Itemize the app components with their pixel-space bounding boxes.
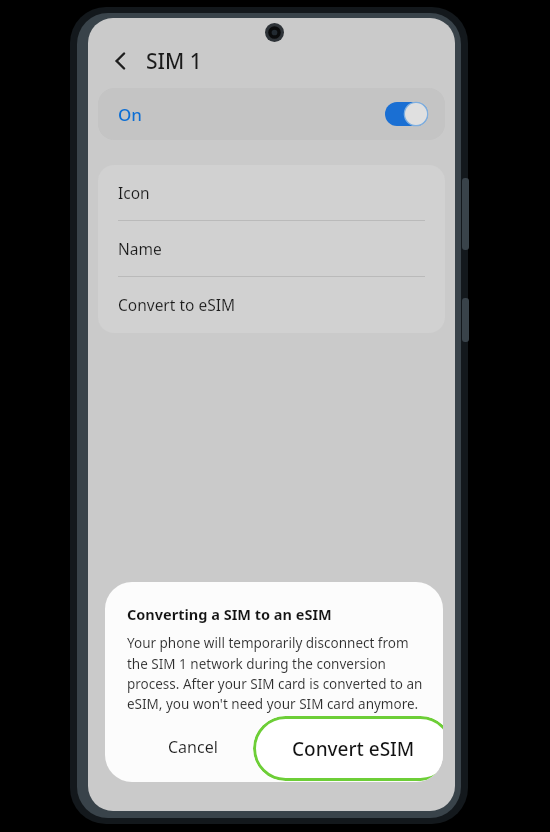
button[interactable]: Convert eSIM — [253, 716, 443, 781]
button[interactable]: Convert to eSIM — [98, 277, 445, 332]
button[interactable]: Icon — [98, 165, 445, 220]
staticText: Cancel — [168, 736, 218, 758]
button[interactable]: Name — [98, 221, 445, 276]
staticText: SIM 1 — [146, 47, 202, 76]
staticText: On — [118, 103, 142, 126]
button[interactable]: SIM 1 on/off — [385, 102, 428, 126]
staticText: Convert eSIM — [292, 736, 415, 762]
button[interactable]: Back — [102, 42, 140, 80]
staticText: Your phone will temporarily disconnect f… — [127, 634, 427, 713]
staticText: Icon — [118, 182, 150, 203]
staticText: Converting a SIM to an eSIM — [127, 604, 332, 624]
button[interactable]: On — [98, 88, 445, 140]
button[interactable]: Cancel — [130, 724, 255, 770]
staticText: Convert to eSIM — [118, 294, 235, 315]
staticText: Name — [118, 238, 162, 259]
